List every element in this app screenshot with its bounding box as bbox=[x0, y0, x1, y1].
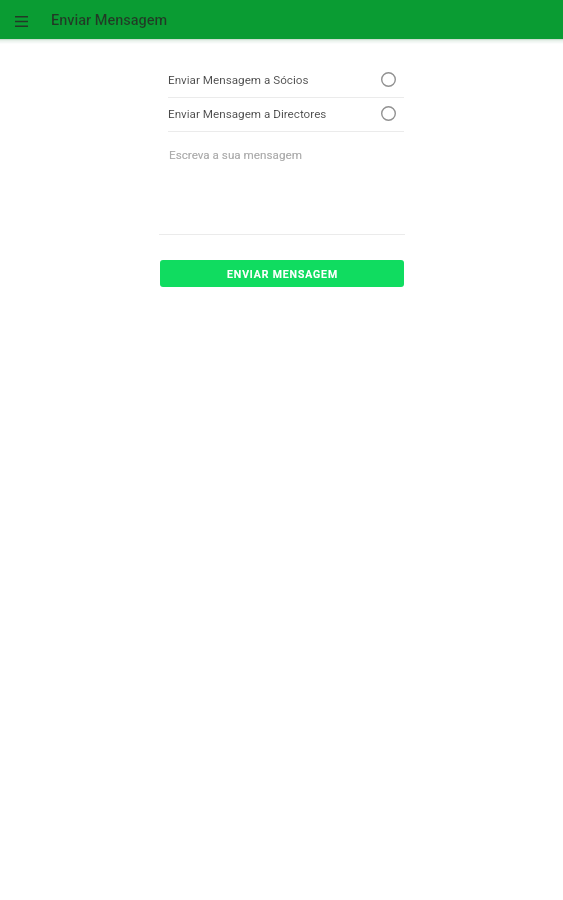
staticText: Enviar Mensagem a Sócios bbox=[168, 73, 309, 87]
button[interactable]: Enviar Mensagem a Sócios bbox=[160, 63, 405, 96]
button[interactable]: ENVIAR MENSAGEM bbox=[160, 260, 404, 287]
staticText: Enviar Mensagem a Directores bbox=[168, 107, 327, 121]
button[interactable]: Open navigation menu bbox=[7, 7, 35, 35]
staticText: ENVIAR MENSAGEM bbox=[227, 268, 338, 280]
button[interactable]: Escreva a sua mensagem bbox=[160, 140, 405, 235]
staticText: Enviar Mensagem bbox=[51, 12, 168, 29]
staticText: Escreva a sua mensagem bbox=[169, 148, 302, 162]
button[interactable]: Enviar Mensagem a Directores bbox=[160, 97, 405, 130]
